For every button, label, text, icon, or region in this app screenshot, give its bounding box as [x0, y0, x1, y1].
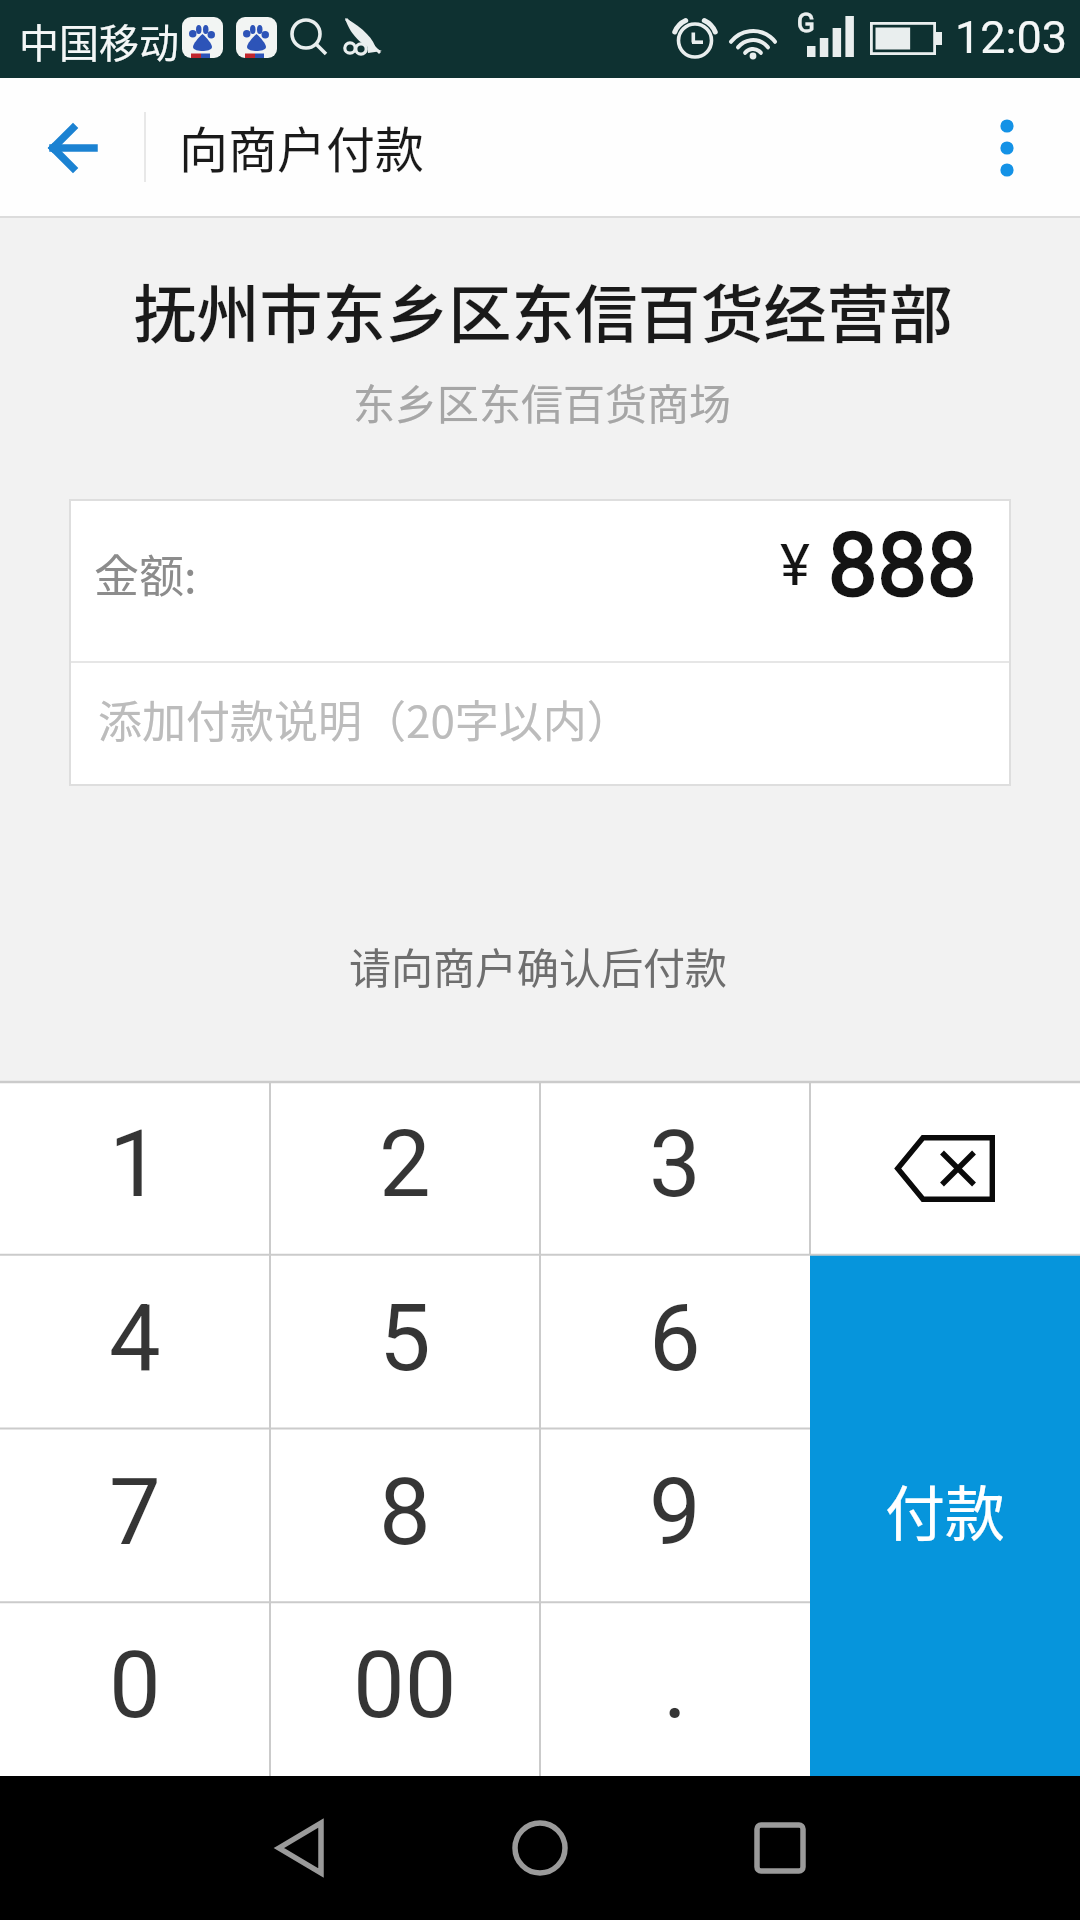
staticText: 东乡区东信百货商场 [2, 371, 1080, 432]
button[interactable]: Recent apps [715, 1776, 845, 1920]
staticText: 1 [109, 1111, 161, 1219]
staticText: 9 [649, 1459, 701, 1567]
button[interactable]: 2 [270, 1081, 540, 1255]
button[interactable]: 6 [540, 1255, 810, 1429]
staticText: ¥ [780, 532, 810, 599]
button[interactable]: 0 [0, 1602, 270, 1776]
button[interactable]: 4 [0, 1255, 270, 1429]
staticText: 00 [353, 1632, 457, 1740]
button[interactable]: Home [475, 1776, 605, 1920]
button[interactable]: 添加付款说明（20字以内） [70, 663, 1010, 785]
button[interactable]: 金额: [70, 500, 1010, 661]
staticText: 5 [379, 1285, 431, 1393]
staticText: G [797, 8, 815, 38]
staticText: 4 [109, 1285, 161, 1393]
staticText: 抚州市东乡区东信百货经营部 [3, 264, 1080, 355]
staticText: 7 [109, 1459, 161, 1567]
staticText: 888 [828, 513, 977, 616]
staticText: . [663, 1632, 688, 1740]
staticText: 请向商户确认后付款 [0, 935, 1078, 996]
button[interactable]: More options [947, 78, 1067, 218]
staticText: 向商户付款 [179, 111, 425, 182]
staticText: 8 [379, 1459, 431, 1567]
button[interactable]: Back [235, 1776, 365, 1920]
staticText: 中国移动 [19, 12, 179, 70]
staticText: 金额: [94, 541, 197, 606]
staticText: 3 [649, 1111, 701, 1219]
staticText: 6 [649, 1285, 701, 1393]
button[interactable]: 付款 [810, 1255, 1080, 1776]
button[interactable]: . [540, 1602, 810, 1776]
button[interactable]: Backspace [810, 1081, 1080, 1255]
staticText: 0 [109, 1632, 161, 1740]
button[interactable]: 9 [540, 1429, 810, 1603]
button[interactable]: 3 [540, 1081, 810, 1255]
button[interactable]: 00 [270, 1602, 540, 1776]
staticText: 12:03 [955, 11, 1068, 64]
button[interactable]: 7 [0, 1429, 270, 1603]
button[interactable]: 1 [0, 1081, 270, 1255]
staticText: 付款 [885, 1466, 1005, 1553]
button[interactable]: 5 [270, 1255, 540, 1429]
button[interactable]: Back [0, 78, 145, 218]
staticText: 添加付款说明（20字以内） [98, 687, 631, 751]
button[interactable]: 8 [270, 1429, 540, 1603]
staticText: 2 [379, 1111, 431, 1219]
